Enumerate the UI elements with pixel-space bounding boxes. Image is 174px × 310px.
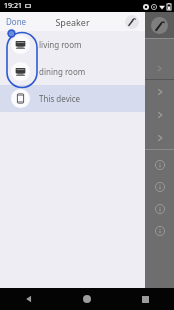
staticText: Speaker [55, 16, 90, 28]
button[interactable]: Info [145, 198, 174, 220]
staticText: 19:21 [4, 1, 22, 11]
button[interactable]: Open [145, 103, 174, 126]
button[interactable]: Recents [116, 288, 174, 310]
staticText: This device [39, 93, 81, 104]
button[interactable]: dining room [0, 58, 145, 85]
button[interactable]: Info [145, 176, 174, 198]
button[interactable]: Info [145, 154, 174, 176]
button[interactable]: Open [145, 80, 174, 103]
button[interactable]: This device [0, 85, 145, 112]
button[interactable]: Home [58, 288, 116, 310]
button[interactable]: Done [0, 13, 33, 30]
button[interactable]: Open [145, 126, 174, 149]
button[interactable]: Settings [125, 15, 139, 29]
button[interactable]: Info [145, 220, 174, 242]
button[interactable]: Settings [151, 17, 168, 34]
staticText: dining room [39, 66, 86, 77]
staticText: Done [6, 16, 27, 27]
staticText: living room [39, 39, 82, 50]
button[interactable]: living room [0, 31, 145, 58]
button[interactable]: Back [0, 288, 58, 310]
